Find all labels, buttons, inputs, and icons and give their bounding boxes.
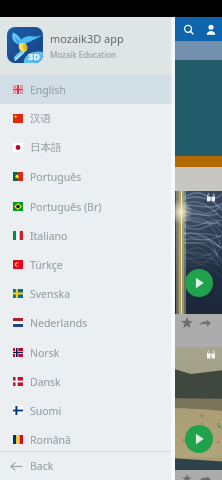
staticText: Svenska (30, 287, 71, 301)
button[interactable]: Română (0, 425, 175, 454)
button[interactable]: English (0, 75, 175, 104)
staticText: Português (Br) (30, 200, 102, 214)
button[interactable]: 日本語 (0, 133, 175, 162)
button[interactable]: Share (198, 316, 211, 329)
staticText: 汉语 (30, 112, 51, 125)
staticText: Dansk (30, 375, 61, 389)
button[interactable]: Play (185, 269, 213, 297)
button[interactable]: Favorite (180, 474, 193, 480)
button[interactable]: Search (178, 19, 199, 40)
button[interactable]: Favorite (180, 316, 193, 329)
staticText: Nederlands (30, 316, 88, 330)
button[interactable]: Nederlands (0, 308, 175, 337)
staticText: 日本語 (30, 141, 62, 154)
staticText: Italiano (30, 229, 68, 243)
staticText: English (30, 83, 66, 97)
button[interactable]: Italiano (0, 221, 175, 250)
staticText: Türkçe (30, 258, 63, 272)
staticText: 3D (28, 50, 40, 62)
button[interactable]: Play (185, 425, 213, 453)
button[interactable]: Svenska (0, 279, 175, 308)
button[interactable]: 汉语 (0, 104, 175, 133)
button[interactable]: Português (Br) (0, 192, 175, 221)
staticText: Back (30, 459, 54, 473)
button[interactable]: Back (0, 452, 175, 480)
staticText: Mozaik Education (50, 49, 117, 60)
staticText: Português (30, 170, 82, 184)
staticText: Norsk (30, 346, 60, 360)
staticText: Suomi (30, 404, 62, 418)
staticText: Română (30, 433, 71, 447)
button[interactable]: Dansk (0, 367, 175, 396)
button[interactable]: Norsk (0, 338, 175, 367)
button[interactable]: Share (198, 474, 211, 480)
button[interactable]: Türkçe (0, 250, 175, 279)
staticText: mozaik3D app (50, 31, 124, 46)
button[interactable]: Suomi (0, 396, 175, 425)
button[interactable]: Português (0, 162, 175, 191)
button[interactable]: Account (200, 19, 221, 40)
